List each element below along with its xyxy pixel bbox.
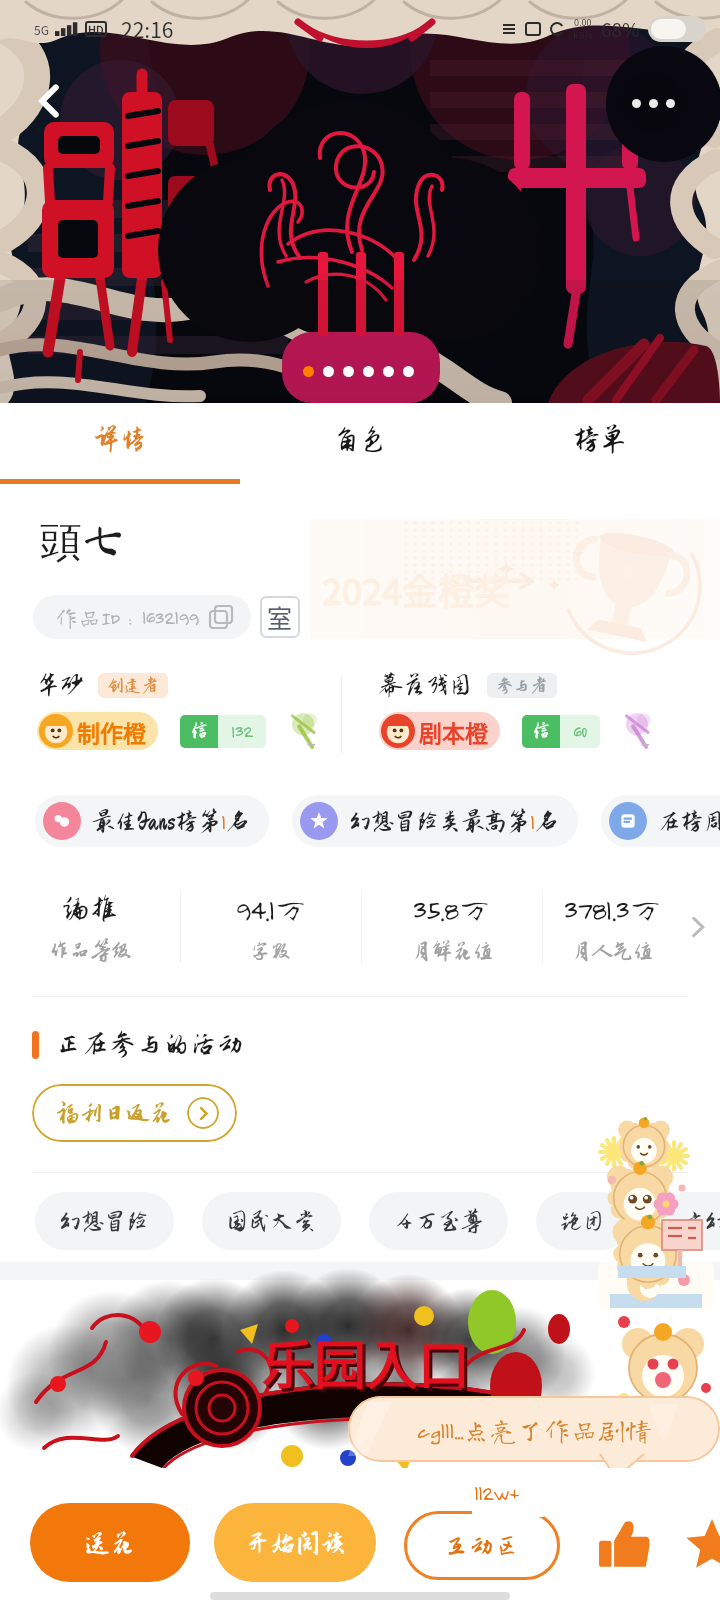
staticText: KB/s bbox=[573, 29, 593, 42]
staticText: 22:16 bbox=[121, 14, 174, 44]
staticText: 乐园入口 bbox=[265, 1327, 474, 1402]
staticText: 字数 bbox=[250, 940, 292, 963]
staticText: 頭七 bbox=[40, 516, 125, 569]
staticText: 幕落残图 bbox=[379, 672, 473, 698]
staticText: 3781.3万 bbox=[563, 892, 663, 926]
button[interactable]: 最佳Fans榜第 bbox=[35, 795, 269, 847]
button[interactable]: More statistics bbox=[682, 911, 714, 943]
staticText: 信 bbox=[190, 721, 209, 742]
staticText: 最佳Fans榜第 bbox=[92, 809, 221, 834]
staticText: 1 bbox=[221, 809, 226, 834]
staticText: 信 bbox=[532, 721, 551, 742]
staticText: 68% bbox=[601, 15, 640, 43]
button[interactable]: Back bbox=[20, 72, 78, 130]
staticText: 创建者 bbox=[107, 676, 159, 695]
staticText: 5G bbox=[34, 21, 49, 38]
staticText: 月鲜花值 bbox=[411, 940, 494, 963]
button[interactable]: 幻想冒险 bbox=[35, 1192, 174, 1250]
staticText: 正在参与的活动 bbox=[55, 1030, 244, 1060]
staticText: 角色 bbox=[333, 425, 387, 455]
staticText: 福利日返花 bbox=[56, 1100, 174, 1126]
button[interactable]: 信 bbox=[180, 715, 266, 748]
staticText: 参与者 bbox=[496, 676, 548, 695]
staticText: 幻想冒险 bbox=[59, 1209, 150, 1234]
button[interactable]: 千万至尊 bbox=[369, 1192, 508, 1250]
staticText: 千万至尊 bbox=[393, 1209, 484, 1234]
button[interactable]: 玄幻 bbox=[658, 1192, 720, 1250]
staticText: 送花 bbox=[85, 1529, 136, 1557]
button[interactable]: Favorite bbox=[682, 1516, 720, 1576]
staticText: 剧本橙 bbox=[419, 715, 488, 748]
button[interactable]: 榜单 bbox=[480, 403, 720, 486]
staticText: 132 bbox=[231, 721, 253, 742]
button[interactable]: Like bbox=[594, 1516, 654, 1576]
staticText: 榜单 bbox=[573, 425, 627, 455]
staticText: 94.1万 bbox=[235, 892, 308, 926]
staticText: 112w+ bbox=[474, 1481, 520, 1505]
staticText: 2024金橙奖 bbox=[322, 563, 510, 615]
button[interactable]: 角色 bbox=[240, 403, 480, 486]
staticText: 名 bbox=[535, 809, 558, 834]
staticText: cg111...点亮了作品剧情 bbox=[416, 1416, 652, 1443]
button[interactable]: 开始阅读 bbox=[214, 1503, 376, 1582]
button[interactable]: cg111...点亮了作品剧情 bbox=[348, 1396, 720, 1462]
staticText: 在榜周数第 bbox=[658, 809, 720, 834]
button[interactable]: 作品ID：1632199 bbox=[33, 595, 251, 639]
staticText: 互动区 bbox=[444, 1532, 520, 1560]
staticText: 幻想冒险类最高第 bbox=[349, 809, 530, 834]
staticText: 作品等级 bbox=[49, 939, 132, 962]
staticText: 月人气值 bbox=[571, 940, 654, 963]
staticText: 开始阅读 bbox=[245, 1529, 346, 1557]
button[interactable]: 福利日返花 bbox=[32, 1084, 237, 1142]
staticText: 名 bbox=[226, 809, 249, 834]
staticText: 详情 bbox=[93, 425, 147, 455]
staticText: 室 bbox=[267, 599, 293, 635]
staticText: 制作橙 bbox=[77, 715, 146, 748]
staticText: 玄幻 bbox=[682, 1209, 720, 1234]
button[interactable]: More options bbox=[622, 72, 684, 134]
button[interactable]: 制作橙 bbox=[37, 712, 158, 750]
button[interactable]: 信 bbox=[522, 715, 600, 748]
staticText: HD bbox=[88, 21, 104, 37]
staticText: 35.8万 bbox=[412, 892, 492, 926]
button[interactable]: 幻想冒险类最高第 bbox=[292, 795, 578, 847]
staticText: 国民大赏 bbox=[226, 1209, 317, 1234]
staticText: 乐园入口 bbox=[262, 1324, 471, 1399]
staticText: 60 bbox=[573, 721, 587, 742]
button[interactable]: 在榜周数第 bbox=[601, 795, 720, 847]
button[interactable]: 国民大赏 bbox=[202, 1192, 341, 1250]
button[interactable]: 室 bbox=[260, 596, 300, 638]
button[interactable]: 详情 bbox=[0, 403, 240, 486]
staticText: 编推 bbox=[61, 893, 119, 925]
staticText: 0.00 bbox=[574, 16, 592, 29]
staticText: 华砂 bbox=[37, 672, 84, 698]
button[interactable]: 剧本橙 bbox=[379, 712, 500, 750]
staticText: 1 bbox=[530, 809, 535, 834]
staticText: 跑团 bbox=[560, 1209, 606, 1234]
button[interactable]: 送花 bbox=[30, 1503, 190, 1582]
button[interactable]: 互动区 bbox=[398, 1481, 576, 1585]
button[interactable]: 跑团 bbox=[536, 1192, 630, 1250]
staticText: 作品ID：1632199 bbox=[55, 606, 199, 629]
